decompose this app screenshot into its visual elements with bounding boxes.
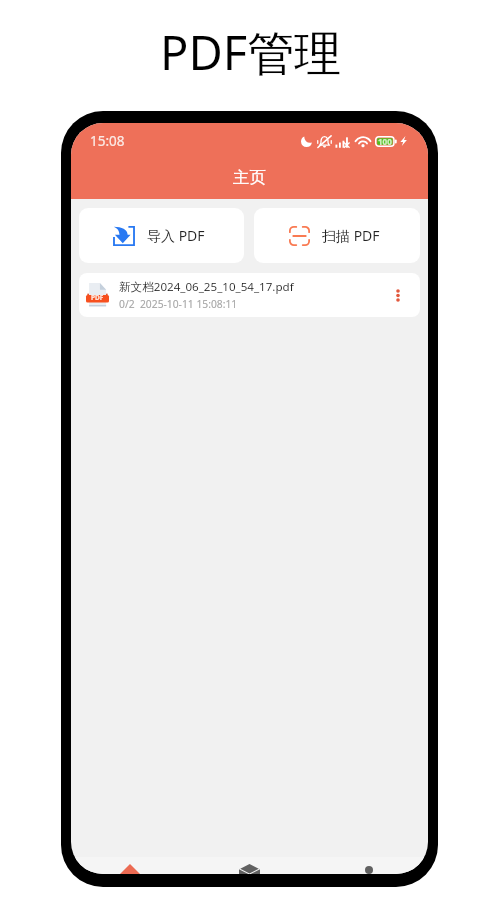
- button[interactable]: 导入 PDF: [79, 208, 244, 263]
- staticText: PDF管理: [160, 20, 342, 84]
- staticText: 导入 PDF: [147, 226, 205, 245]
- button[interactable]: 扫描 PDF: [254, 208, 420, 263]
- button[interactable]: More options: [384, 281, 412, 309]
- button[interactable]: Recents: [349, 857, 389, 874]
- button[interactable]: Back: [110, 857, 150, 874]
- button[interactable]: Home: [229, 857, 269, 874]
- button[interactable]: PDF: [79, 273, 420, 317]
- staticText: PDF: [91, 293, 104, 302]
- staticText: 扫描 PDF: [322, 226, 380, 245]
- staticText: 100: [378, 136, 392, 147]
- staticText: 0/2 2025-10-11 15:08:11: [119, 297, 238, 311]
- staticText: 15:08: [90, 132, 125, 150]
- staticText: 主页: [233, 167, 266, 188]
- staticText: 新文档2024_06_25_10_54_17.pdf: [119, 279, 294, 295]
